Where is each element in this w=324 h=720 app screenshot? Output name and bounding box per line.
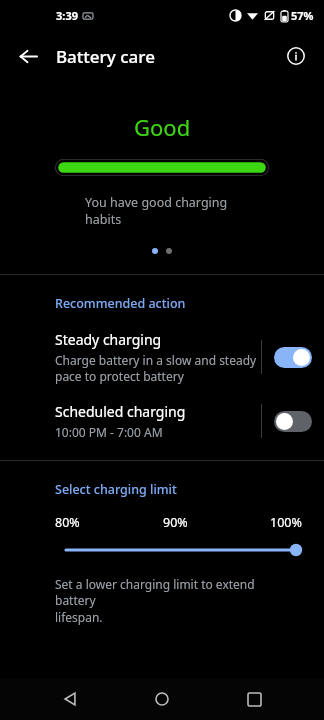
staticText: Good bbox=[134, 112, 191, 142]
staticText: 100% bbox=[270, 514, 302, 531]
staticText: Select charging limit bbox=[55, 481, 177, 498]
staticText: 10:00 PM - 7:00 AM bbox=[55, 424, 163, 440]
button[interactable]: Information bbox=[276, 36, 316, 76]
button[interactable]: Steady charging toggle bbox=[274, 347, 312, 368]
staticText: You have good charging habits bbox=[85, 194, 228, 228]
button[interactable]: Home bbox=[140, 678, 184, 720]
staticText: Charge battery in a slow and steady pace… bbox=[55, 352, 257, 384]
button[interactable]: Charging limit slider bbox=[0, 540, 324, 560]
button[interactable]: Scheduled charging bbox=[0, 400, 324, 442]
button[interactable]: Back bbox=[8, 36, 48, 76]
staticText: 80% bbox=[55, 514, 80, 531]
staticText: Steady charging bbox=[55, 330, 162, 349]
button[interactable]: Recent apps bbox=[232, 678, 276, 720]
staticText: 3:39 bbox=[56, 8, 78, 23]
button[interactable]: Scheduled charging toggle bbox=[274, 411, 312, 432]
staticText: 90% bbox=[163, 514, 188, 531]
staticText: Scheduled charging bbox=[55, 402, 186, 421]
button[interactable]: Back bbox=[48, 678, 92, 720]
staticText: Recommended action bbox=[55, 295, 186, 312]
staticText: Set a lower charging limit to extend bat… bbox=[55, 576, 298, 626]
button[interactable]: Steady charging bbox=[0, 328, 324, 386]
staticText: Battery care bbox=[56, 45, 155, 68]
staticText: 57% bbox=[291, 8, 314, 23]
